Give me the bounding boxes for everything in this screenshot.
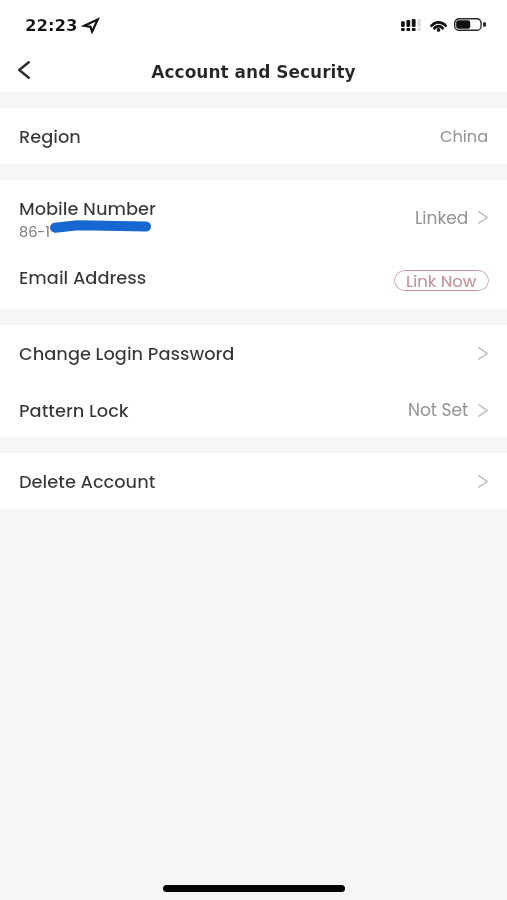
- staticText: Change Login Password: [19, 341, 235, 366]
- staticText: China: [440, 125, 489, 148]
- staticText: Pattern Lock: [19, 398, 129, 423]
- staticText: Email Address: [19, 265, 147, 290]
- button[interactable]: Change Login Password: [0, 325, 507, 382]
- staticText: Account and Security: [151, 62, 356, 82]
- button[interactable]: Pattern Lock: [0, 382, 507, 438]
- staticText: Not Set: [408, 398, 469, 422]
- staticText: Linked: [415, 206, 469, 230]
- button[interactable]: Link Now: [394, 270, 489, 291]
- staticText: 86-1: [19, 222, 50, 242]
- button[interactable]: Mobile Number: [0, 180, 507, 245]
- button[interactable]: Back: [0, 48, 47, 92]
- staticText: Link Now: [406, 270, 477, 291]
- staticText: Region: [19, 124, 81, 149]
- staticText: 22:23: [25, 16, 78, 35]
- button[interactable]: Email Address: [0, 245, 507, 310]
- staticText: Delete Account: [19, 469, 156, 494]
- staticText: Mobile Number: [19, 196, 156, 221]
- button[interactable]: Region: [0, 108, 507, 164]
- button[interactable]: Delete Account: [0, 453, 507, 509]
